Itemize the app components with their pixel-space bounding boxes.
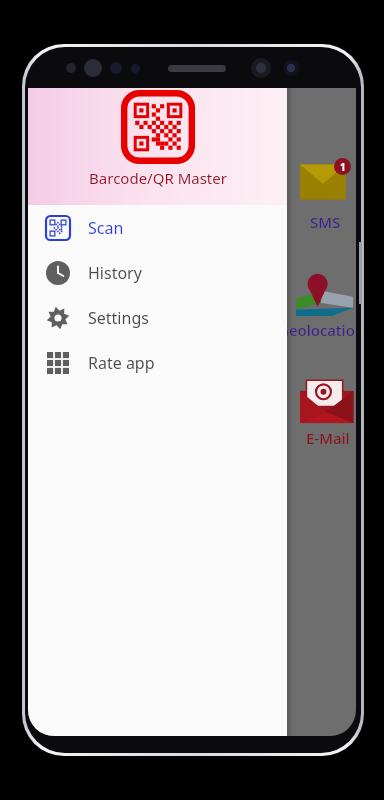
staticText: 1 [340, 160, 346, 174]
other: Scan [46, 216, 70, 240]
staticText: Settings [88, 307, 149, 329]
staticText: History [88, 262, 142, 284]
staticText: Geolocation [278, 320, 356, 340]
staticText: Rate app [88, 352, 155, 374]
other: Settings [46, 306, 70, 330]
button[interactable]: Rate app [28, 340, 287, 385]
button[interactable]: Scan [28, 205, 287, 250]
staticText: Scan [88, 217, 124, 239]
staticText: E-Mail [306, 428, 350, 448]
other: History [46, 261, 70, 285]
staticText: SMS [310, 212, 341, 232]
button[interactable]: Settings [28, 295, 287, 340]
button[interactable]: History [28, 250, 287, 295]
staticText: Barcode/QR Master [89, 168, 227, 188]
other: Rate app [47, 352, 69, 374]
